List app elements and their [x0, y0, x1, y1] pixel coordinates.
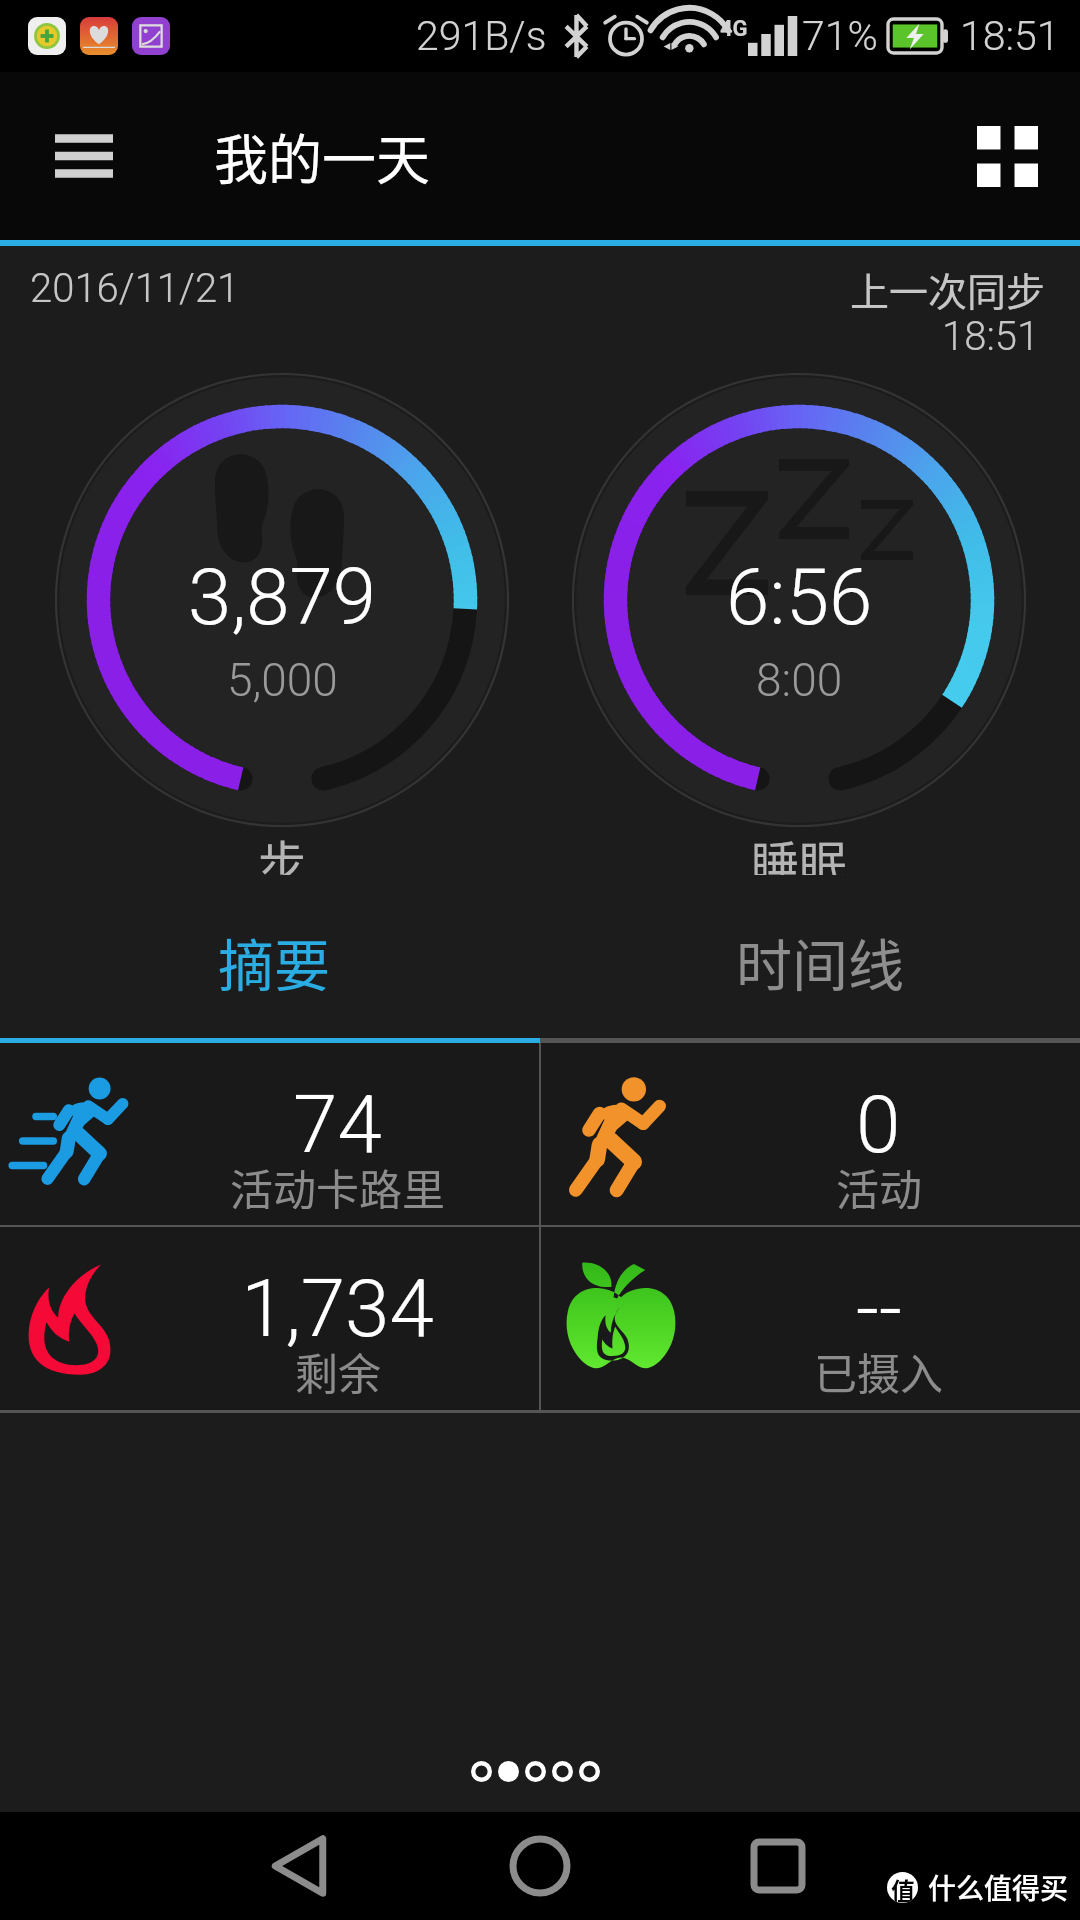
staticText: 71%: [802, 12, 878, 60]
staticText: 摘要: [218, 921, 330, 1002]
staticText: 2016/11/21: [30, 265, 240, 312]
button[interactable]: 摘要: [0, 885, 540, 1038]
staticText: 6:56: [726, 552, 873, 643]
button[interactable]: 0: [541, 1043, 1080, 1225]
button[interactable]: --: [541, 1227, 1080, 1410]
staticText: 0: [856, 1078, 901, 1172]
staticText: 上一次同步: [850, 261, 1046, 317]
button[interactable]: Menu: [36, 116, 132, 196]
staticText: 18:51: [942, 313, 1040, 360]
staticText: 3,879: [188, 552, 377, 643]
staticText: 4G: [720, 16, 748, 42]
staticText: 活动卡路里: [230, 1156, 445, 1209]
staticText: 已摄入: [814, 1340, 943, 1394]
staticText: 18:51: [960, 12, 1060, 60]
staticText: 活动: [836, 1156, 922, 1209]
staticText: 1,734: [241, 1262, 434, 1356]
button[interactable]: 时间线: [540, 885, 1080, 1038]
staticText: 时间线: [736, 921, 904, 1002]
staticText: 74: [293, 1078, 382, 1172]
button[interactable]: Grid view: [977, 126, 1038, 187]
staticText: 5,000: [227, 653, 338, 707]
button[interactable]: Back: [272, 1837, 326, 1895]
staticText: 剩余: [295, 1340, 381, 1394]
staticText: 值: [891, 1872, 915, 1903]
staticText: 我的一天: [214, 117, 430, 195]
button[interactable]: 74: [0, 1043, 539, 1225]
staticText: 8:00: [756, 653, 843, 707]
staticText: --: [856, 1262, 902, 1356]
button[interactable]: Home: [510, 1836, 570, 1896]
staticText: 步: [258, 825, 307, 875]
staticText: 什么值得买: [928, 1867, 1069, 1908]
button[interactable]: Recents: [752, 1840, 804, 1892]
staticText: 睡眠: [751, 825, 848, 875]
button[interactable]: 1,734: [0, 1227, 539, 1410]
staticText: 291B/s: [416, 12, 547, 60]
